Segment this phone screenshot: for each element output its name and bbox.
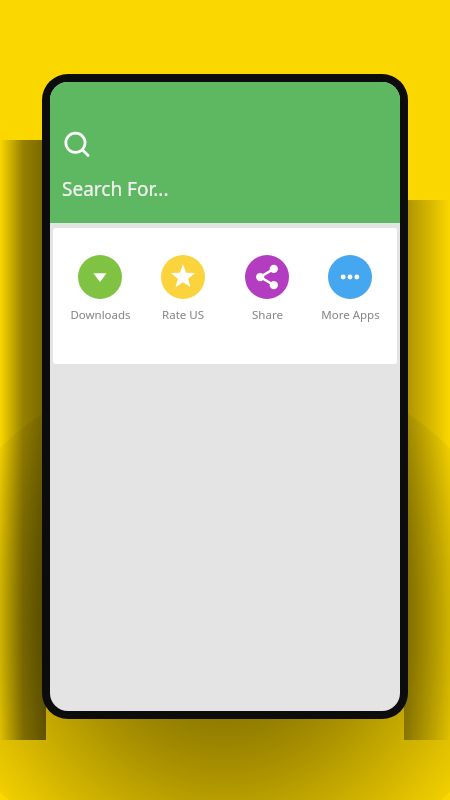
staticText: Share <box>252 307 283 323</box>
staticText: Search For... <box>62 176 169 202</box>
staticText: Downloads <box>70 307 131 323</box>
button[interactable]: Search <box>62 130 94 162</box>
button[interactable]: Rate US <box>143 253 223 325</box>
button[interactable]: Share <box>227 253 307 325</box>
staticText: More Apps <box>321 307 380 323</box>
button[interactable]: Downloads <box>60 253 140 325</box>
staticText: Rate US <box>162 307 204 323</box>
button[interactable]: More Apps <box>310 253 390 325</box>
